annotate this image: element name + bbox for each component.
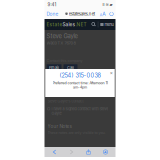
button[interactable]: Share [84, 147, 93, 157]
staticText: ıl ≋ ▰ [102, 2, 112, 7]
staticText: am-4pm [73, 85, 87, 89]
staticText: Preferred contact time: Afternoon 11 [52, 81, 107, 85]
button[interactable]: Forward [67, 147, 76, 157]
staticText: (254) 315-0038 [59, 72, 100, 79]
button[interactable]: Reload [108, 9, 114, 19]
button[interactable]: Tabs [101, 147, 110, 157]
button[interactable]: menu [98, 19, 115, 30]
staticText: estatesales.net [69, 11, 95, 17]
staticText: Estate [46, 22, 62, 27]
staticText: .NET [75, 22, 86, 27]
staticText: Done [46, 11, 58, 17]
staticText: Waco TX 76708 [46, 41, 75, 45]
button[interactable]: Search [90, 19, 98, 30]
button[interactable]: Close [109, 70, 114, 75]
button[interactable]: Back [50, 147, 59, 157]
button[interactable]: Estate [44, 22, 86, 27]
staticText: A [102, 11, 105, 17]
staticText: Your Notes [47, 124, 71, 129]
staticText: Steve Gayle's contact [47, 99, 83, 103]
staticText: Contact this company [46, 58, 82, 63]
staticText: 9:41 [47, 2, 56, 7]
staticText: Gayle [51, 111, 61, 115]
staticText: I have a signed contract with Steve [51, 106, 108, 111]
staticText: × [110, 70, 113, 75]
button[interactable]: Done [44, 9, 60, 19]
staticText: Call [67, 65, 74, 70]
button[interactable]: Email [46, 64, 61, 71]
staticText: menu [104, 22, 113, 27]
staticText: Email [49, 65, 59, 70]
staticText: A [100, 13, 102, 17]
button[interactable]: Text size [99, 9, 105, 19]
staticText: These notes are only visible to you. [47, 130, 105, 135]
staticText: Sales [62, 22, 75, 27]
staticText: Steve Gayle [46, 32, 77, 40]
button[interactable]: Call [63, 64, 77, 71]
